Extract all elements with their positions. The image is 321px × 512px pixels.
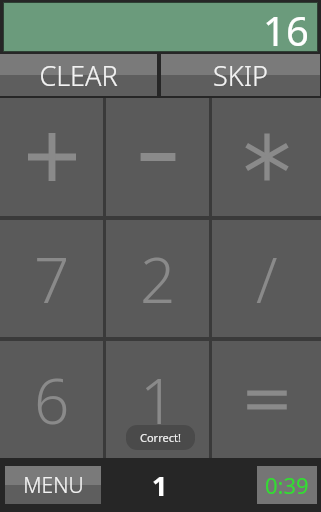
staticText: MENU	[23, 471, 84, 500]
staticText: 2	[140, 237, 176, 321]
button[interactable]: 6	[0, 341, 103, 458]
staticText: 0:39	[265, 470, 309, 500]
other: Minus	[128, 127, 188, 187]
button[interactable]: /	[212, 220, 321, 337]
button[interactable]: SKIP	[161, 54, 320, 96]
other: Multiply	[239, 129, 295, 185]
button[interactable]: MENU	[5, 466, 101, 504]
button[interactable]: Minus	[106, 98, 209, 216]
button[interactable]: CLEAR	[0, 54, 157, 96]
button[interactable]: 7	[0, 220, 103, 337]
staticText: 6	[34, 358, 70, 442]
button[interactable]: 0:39	[257, 466, 317, 504]
staticText: 7	[34, 237, 70, 321]
staticText: 16	[263, 3, 309, 51]
other: Plus	[22, 127, 82, 187]
staticText: /	[256, 237, 278, 321]
staticText: Correct!	[140, 430, 181, 445]
button[interactable]: 1	[106, 341, 209, 458]
button[interactable]: Plus	[0, 98, 103, 216]
button[interactable]: Multiply	[212, 98, 321, 216]
staticText: CLEAR	[39, 57, 118, 94]
button[interactable]: 2	[106, 220, 209, 337]
staticText: SKIP	[213, 57, 268, 94]
other: Equals	[237, 370, 297, 430]
staticText: 1	[152, 467, 168, 504]
button[interactable]: Equals	[212, 341, 321, 458]
staticText: 1	[140, 358, 176, 442]
